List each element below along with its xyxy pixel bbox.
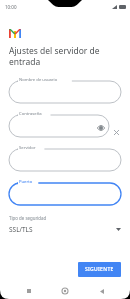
button[interactable]: Borrar <box>111 127 121 137</box>
staticText: Contraseña <box>19 111 42 117</box>
staticText: Puerto <box>19 179 33 185</box>
staticText: Tipo de seguridad <box>9 215 47 221</box>
button[interactable]: Mostrar contraseña <box>96 123 105 132</box>
button[interactable]: Aplicaciones recientes <box>21 283 37 299</box>
staticText: 10:00 <box>5 4 17 10</box>
staticText: Nombre de usuario <box>19 77 58 83</box>
button[interactable]: Contraseña <box>9 111 109 137</box>
button[interactable]: Nombre de usuario <box>9 77 121 103</box>
button[interactable]: Atrás <box>94 283 110 299</box>
staticText: Ajustes del servidor de entrada <box>9 45 121 67</box>
staticText: Servidor <box>19 145 36 151</box>
button[interactable]: SIGUIENTE <box>78 262 121 277</box>
staticText: SIGUIENTE <box>85 266 114 273</box>
button[interactable]: Puerto <box>9 179 121 205</box>
staticText: SSL/TLS <box>9 225 116 234</box>
button[interactable]: Tipo de seguridad <box>9 215 121 234</box>
button[interactable]: Servidor <box>9 145 121 171</box>
button[interactable]: Inicio <box>57 283 73 299</box>
